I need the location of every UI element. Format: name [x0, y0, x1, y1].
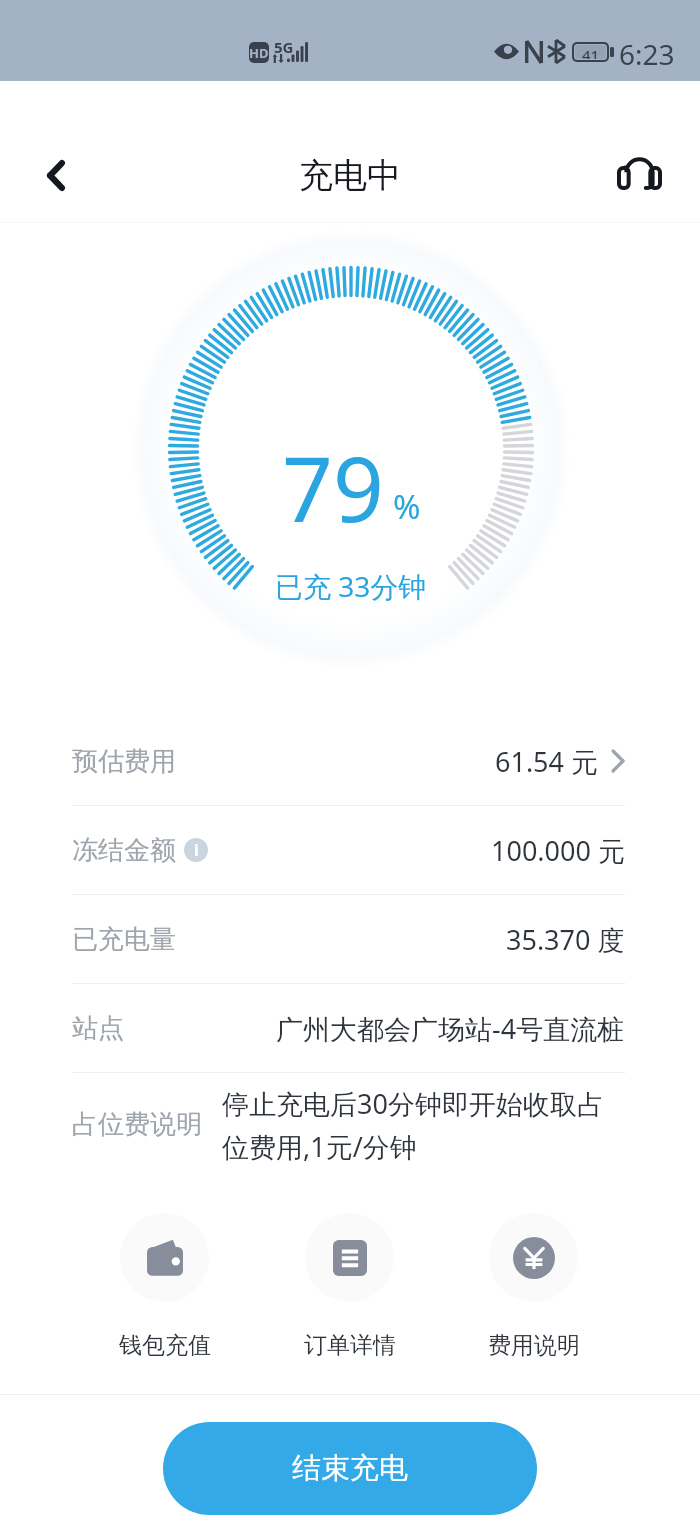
staticText: 6:23 — [619, 35, 675, 73]
staticText: 预估费用 — [72, 745, 176, 778]
staticText: 广州大都会广场站-4号直流桩 — [276, 1010, 625, 1047]
button[interactable]: 冻结金额 — [72, 806, 625, 894]
staticText: 79 — [282, 427, 384, 548]
staticText: i — [194, 839, 199, 861]
staticText: 冻结金额 — [72, 834, 176, 867]
staticText: 停止充电后30分钟即开始收取占位费用,1元/分钟 — [222, 1085, 625, 1165]
staticText: 钱包充值 — [119, 1331, 211, 1360]
button[interactable]: 已充电量 — [72, 895, 625, 983]
button[interactable]: Back — [23, 143, 88, 208]
staticText: 100.000 元 — [491, 832, 625, 869]
staticText: HD — [249, 44, 269, 62]
button[interactable]: 费用说明 — [469, 1213, 598, 1360]
button[interactable]: 占位费说明 — [72, 1073, 625, 1177]
staticText: 充电中 — [299, 154, 401, 197]
staticText: 结束充电 — [292, 1450, 408, 1487]
button[interactable]: 站点 — [72, 984, 625, 1072]
staticText: 35.370 度 — [506, 921, 625, 958]
staticText: 已充 33分钟 — [275, 567, 427, 605]
staticText: 已充电量 — [72, 923, 176, 956]
staticText: 占位费说明 — [72, 1108, 202, 1141]
staticText: 费用说明 — [488, 1331, 580, 1360]
staticText: 41 — [582, 45, 600, 59]
staticText: 订单详情 — [304, 1331, 396, 1360]
button[interactable]: 钱包充值 — [100, 1213, 229, 1360]
button[interactable]: 订单详情 — [285, 1213, 414, 1360]
button[interactable]: 结束充电 — [163, 1422, 537, 1515]
button[interactable]: Customer service — [607, 143, 672, 208]
staticText: 站点 — [72, 1012, 124, 1045]
staticText: 5G — [274, 37, 294, 57]
staticText: 61.54 元 — [495, 743, 599, 780]
button[interactable]: 预估费用 — [72, 717, 625, 805]
staticText: % — [393, 484, 421, 529]
